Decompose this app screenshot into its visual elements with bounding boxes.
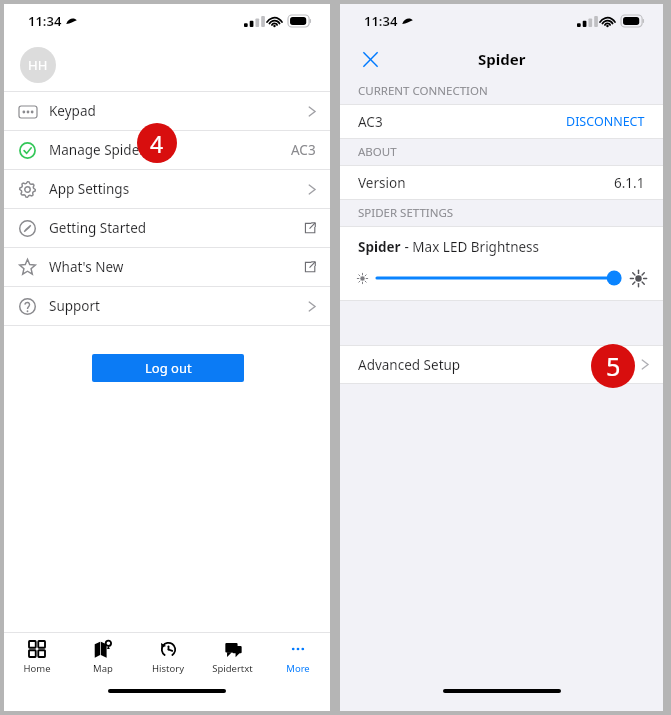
button[interactable]: AC3 [340,105,663,138]
staticText: More [286,662,310,675]
button[interactable]: Support [4,287,330,325]
staticText: Spidertxt [212,662,253,675]
button[interactable]: Manage Spider [4,131,330,169]
staticText: App Settings [49,180,130,198]
button[interactable]: Getting Started [4,209,330,247]
staticText: Home [23,662,51,675]
button[interactable]: Advanced Setup [340,346,663,383]
staticText: AC3 [291,141,316,159]
staticText: 6.1.1 [614,174,645,192]
staticText: AC3 [358,113,383,131]
button[interactable]: Keypad [4,92,330,130]
staticText: Spider [478,49,526,69]
staticText: Spider [358,238,401,256]
button[interactable]: History [135,639,200,675]
button[interactable]: What's New [4,248,330,286]
staticText: What's New [49,258,124,276]
staticText: 5 [606,349,621,383]
staticText: Getting Started [49,219,147,237]
button[interactable]: More [265,639,330,675]
staticText: Map [93,662,113,675]
staticText: 11:34 [28,12,62,30]
button[interactable]: Map [70,639,135,675]
button[interactable]: Close [352,41,388,77]
staticText: CURRENT CONNECTION [358,83,488,99]
staticText: DISCONNECT [566,113,645,130]
staticText: Log out [145,359,192,377]
staticText: Manage Spider [49,141,145,159]
button[interactable]: Spidertxt [200,639,265,675]
staticText: HH [28,56,48,74]
button[interactable]: Home [4,639,70,675]
staticText: 11:34 [364,12,398,30]
staticText: Advanced Setup [358,356,461,374]
staticText: History [152,662,184,675]
button[interactable]: App Settings [4,170,330,208]
staticText: Keypad [49,102,96,120]
staticText: 4 [150,128,164,159]
staticText: Support [49,297,100,315]
staticText: ABOUT [358,144,397,160]
staticText: SPIDER SETTINGS [358,205,454,221]
staticText: Version [358,174,406,192]
button[interactable]: Log out [92,354,244,382]
staticText: - Max LED Brightness [401,238,540,256]
